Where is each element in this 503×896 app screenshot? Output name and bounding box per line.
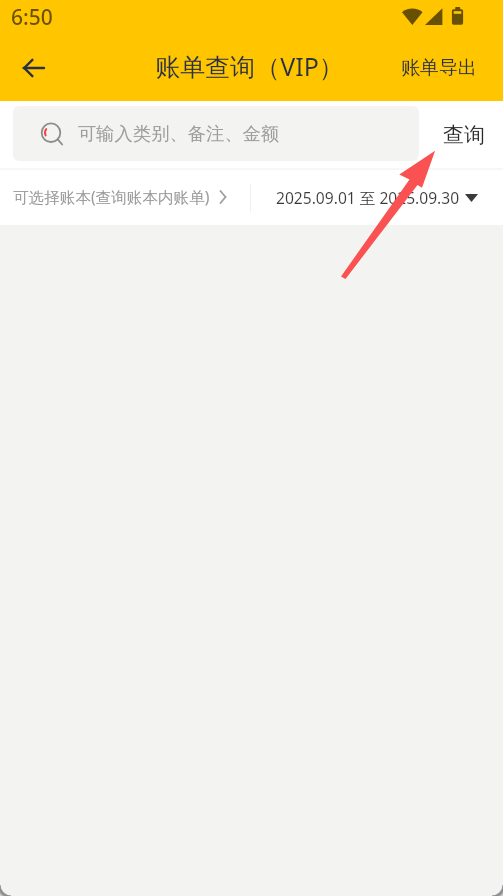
staticText: 账单导出 (401, 56, 477, 80)
button[interactable]: 查询 (426, 108, 501, 162)
button[interactable]: Back (0, 42, 66, 94)
staticText: 6:50 (11, 3, 53, 32)
staticText: 可选择账本(查询账本内账单) (13, 186, 210, 207)
staticText: 查询 (443, 122, 485, 148)
button[interactable]: 可输入类别、备注、金额 (13, 106, 419, 161)
staticText: 可输入类别、备注、金额 (78, 122, 280, 145)
staticText: 2025.09.01 至 2025.09.30 (276, 187, 460, 208)
staticText: 账单查询（VIP） (155, 49, 344, 83)
button[interactable]: 2025.09.01 至 2025.09.30 (276, 175, 478, 219)
button[interactable]: 账单导出 (401, 43, 477, 93)
button[interactable]: 可选择账本(查询账本内账单) (13, 186, 227, 207)
